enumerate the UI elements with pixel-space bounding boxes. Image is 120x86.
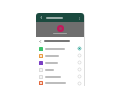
button[interactable] bbox=[36, 45, 84, 52]
button[interactable] bbox=[36, 80, 84, 86]
button[interactable]: More options bbox=[77, 16, 81, 20]
button[interactable] bbox=[36, 66, 84, 73]
button[interactable] bbox=[36, 52, 84, 59]
button[interactable] bbox=[36, 59, 84, 66]
button[interactable]: Back bbox=[39, 15, 44, 20]
button[interactable]: Close bbox=[38, 39, 43, 44]
button[interactable] bbox=[36, 73, 84, 80]
